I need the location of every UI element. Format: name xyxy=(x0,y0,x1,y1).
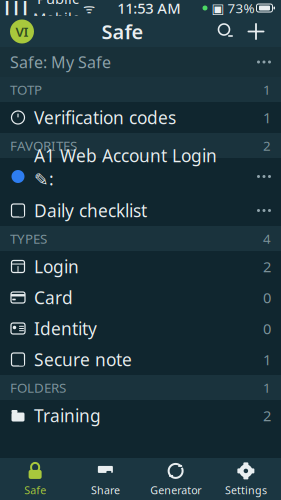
staticText: FOLDERS xyxy=(10,379,66,396)
staticText: Public Mobile xyxy=(33,0,80,27)
button[interactable]: Verification codes xyxy=(0,102,281,133)
button[interactable]: Secure note xyxy=(0,344,281,375)
staticText: Training xyxy=(34,404,101,427)
staticText: Safe xyxy=(24,483,46,497)
staticText: 1 xyxy=(263,108,271,127)
staticText: TYPES xyxy=(10,230,47,247)
staticText: Login xyxy=(34,255,79,278)
staticText: Safe: My Safe xyxy=(10,51,111,73)
staticText: VI xyxy=(15,23,28,40)
staticText: 1 xyxy=(263,350,271,369)
button[interactable]: Safe xyxy=(0,458,70,500)
staticText: Card xyxy=(34,286,73,309)
staticText: me@mydomain.com xyxy=(34,191,161,209)
button[interactable]: Safe: My Safe xyxy=(0,47,281,77)
staticText: Daily checklist xyxy=(34,199,147,222)
staticText: 0 xyxy=(263,319,271,338)
button[interactable]: Identity xyxy=(0,313,281,344)
staticText: Settings xyxy=(225,483,267,497)
staticText: Safe xyxy=(101,18,143,45)
staticText: 1 xyxy=(263,379,271,396)
staticText: FAVORITES xyxy=(10,137,77,154)
button[interactable]: Search xyxy=(211,16,241,46)
staticText: 2 xyxy=(263,257,271,276)
button[interactable]: Login xyxy=(0,251,281,282)
button[interactable]: Training xyxy=(0,400,281,431)
staticText: Generator xyxy=(150,483,201,497)
staticText: Verification codes xyxy=(34,106,176,129)
staticText: Secure note xyxy=(34,348,132,371)
staticText: ▣ 73% xyxy=(207,0,254,17)
button[interactable]: Account xyxy=(10,19,34,43)
button[interactable]: Add item xyxy=(241,16,271,46)
staticText: ᯤ xyxy=(80,0,95,17)
staticText: 1 xyxy=(263,81,271,98)
staticText: TOTP xyxy=(10,81,42,98)
button[interactable]: Settings xyxy=(211,458,281,500)
staticText: A1 Web Account Login ✎: xyxy=(34,144,217,190)
staticText: 2 xyxy=(263,137,271,154)
staticText: 4 xyxy=(263,230,271,247)
button[interactable]: Generator xyxy=(140,458,211,500)
staticText: 11:53 AM xyxy=(117,0,180,18)
button[interactable]: Daily checklist xyxy=(0,195,281,226)
staticText: ▎▎▎ xyxy=(6,1,33,15)
staticText: 2 xyxy=(263,406,271,425)
staticText: Identity xyxy=(34,317,97,340)
button[interactable]: Card xyxy=(0,282,281,313)
button[interactable]: A1 Web Account Login ✎: xyxy=(0,158,281,195)
staticText: 0 xyxy=(263,288,271,307)
button[interactable]: Share xyxy=(70,458,140,500)
staticText: Share xyxy=(91,483,120,497)
